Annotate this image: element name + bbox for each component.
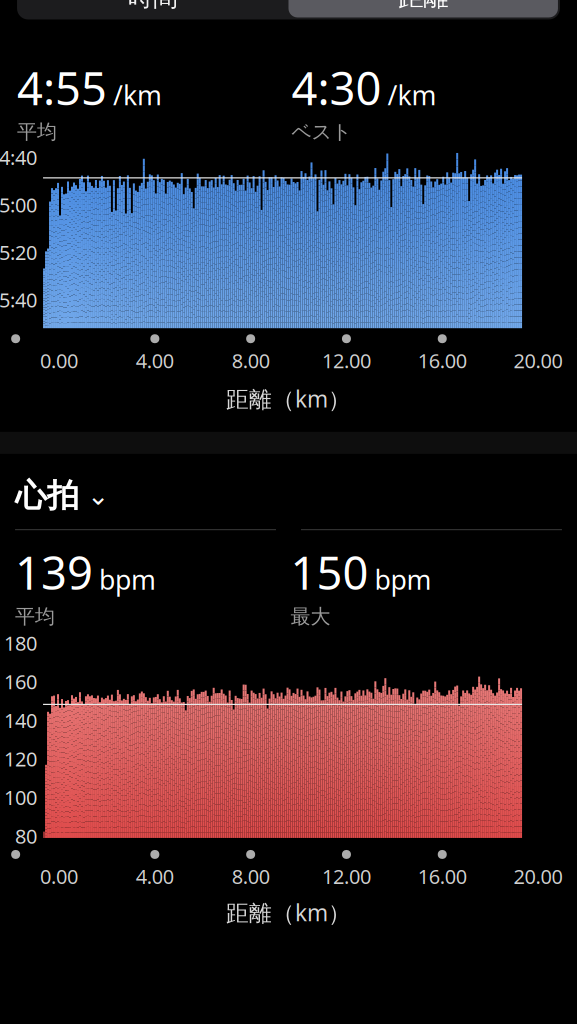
staticText: 5:20 [0,239,37,265]
staticText: 100 [4,784,37,811]
staticText: 平均 [17,120,57,144]
staticText: 150 [290,542,368,602]
staticText: 140 [4,707,37,733]
staticText: bpm [374,562,431,597]
staticText: 120 [4,745,37,772]
button[interactable]: 心拍 [0,454,577,521]
staticText: 5:00 [0,191,37,218]
staticText: 5:40 [0,286,37,313]
staticText: 8.00 [232,347,270,374]
staticText: bpm [99,562,156,597]
staticText: 20.00 [514,347,563,374]
button[interactable]: 時間 [17,0,288,19]
staticText: 12.00 [322,863,371,889]
staticText: 16.00 [418,347,467,374]
staticText: 80 [15,823,37,849]
staticText: 距離（km） [226,897,351,928]
staticText: 180 [4,630,37,656]
staticText: 0.00 [40,347,78,374]
staticText: 時間 [128,0,178,12]
staticText: 4:55 [17,57,107,118]
staticText: 4.00 [136,863,174,889]
staticText: 心拍 [15,476,79,515]
staticText: 16.00 [418,863,467,889]
staticText: 4.00 [136,347,174,374]
staticText: 8.00 [232,863,270,889]
staticText: 距離 [398,0,448,12]
staticText: 4:40 [0,144,37,170]
staticText: 12.00 [322,347,371,374]
staticText: /km [387,77,436,112]
staticText: /km [113,77,162,112]
staticText: 20.00 [514,863,563,889]
staticText: 0.00 [40,863,78,889]
staticText: 4:30 [291,57,381,118]
staticText: 139 [15,542,93,602]
staticText: 平均 [15,604,55,629]
staticText: 最大 [290,604,330,629]
staticText: 距離（km） [226,384,351,414]
staticText: ベスト [291,120,351,144]
button[interactable]: 距離 [288,0,560,17]
staticText: 160 [4,668,37,695]
staticText: ⌄ [87,480,109,511]
